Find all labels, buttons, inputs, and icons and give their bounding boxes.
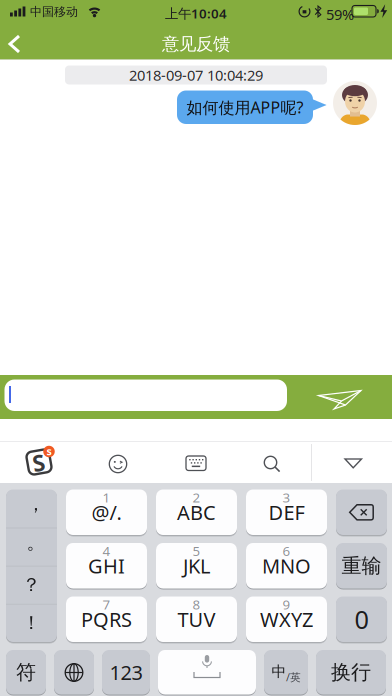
button[interactable]: ， (6, 489, 57, 528)
button[interactable]: Keyboard layout (177, 441, 215, 483)
staticText: 中国移动 (30, 4, 78, 19)
button[interactable]: Chinese/English (264, 650, 308, 694)
staticText: 2 (192, 488, 200, 506)
staticText: DEF (268, 499, 304, 526)
button[interactable]: 8 (156, 596, 237, 642)
button[interactable]: Back (0, 29, 40, 59)
staticText: 8 (192, 595, 200, 613)
button[interactable]: 1 (66, 489, 147, 535)
button[interactable]: 123 (102, 650, 150, 694)
button[interactable]: Next keyboard (54, 650, 94, 694)
staticText: s (46, 444, 51, 458)
staticText: 换行 (331, 660, 371, 685)
staticText: 3 (282, 488, 290, 506)
button[interactable]: 7 (66, 596, 147, 642)
staticText: 重输 (341, 553, 381, 578)
staticText: 59% (326, 4, 354, 24)
staticText: 如何使用APP呢? (186, 97, 303, 118)
staticText: 4 (102, 542, 110, 560)
staticText: S (32, 447, 44, 477)
staticText: 中 (271, 662, 286, 680)
staticText: 。 (26, 531, 45, 554)
button[interactable]: 9 (246, 596, 327, 642)
staticText: ？ (22, 573, 41, 596)
staticText: MNO (262, 552, 311, 579)
staticText: ， (26, 493, 45, 515)
button[interactable]: 重输 (336, 543, 387, 588)
staticText: JKL (183, 552, 210, 579)
staticText: PQRS (81, 606, 132, 633)
button[interactable]: ？ (6, 566, 57, 604)
staticText: 符 (16, 660, 36, 685)
staticText: 2018-09-07 10:04:29 (129, 65, 263, 85)
staticText: 6 (282, 542, 290, 560)
button[interactable]: Send (305, 375, 375, 419)
staticText: @/. (91, 499, 121, 526)
button[interactable]: 5 (156, 543, 237, 588)
staticText: 上午10:04 (165, 4, 227, 22)
staticText: GHI (88, 552, 125, 579)
button[interactable]: 3 (246, 489, 327, 535)
staticText: ！ (22, 611, 41, 634)
staticText: 5 (192, 542, 200, 560)
staticText: 9 (282, 595, 290, 613)
button[interactable]: 4 (66, 543, 147, 588)
staticText: 123 (109, 659, 142, 686)
button[interactable]: 6 (246, 543, 327, 588)
button[interactable]: Search (253, 441, 291, 483)
button[interactable]: Sogou input (17, 441, 61, 483)
staticText: 7 (102, 595, 110, 613)
button[interactable]: ！ (6, 604, 57, 642)
button[interactable]: 0 (336, 596, 387, 642)
staticText: 0 (354, 602, 368, 636)
button[interactable]: Delete (336, 489, 387, 535)
staticText: ABC (177, 499, 216, 526)
button[interactable]: 。 (6, 528, 57, 566)
button[interactable]: Dismiss keyboard (334, 441, 372, 483)
button[interactable]: 符 (6, 650, 46, 694)
staticText: TUV (177, 606, 215, 633)
button[interactable]: 换行 (316, 650, 386, 694)
button[interactable]: Message input (4, 379, 287, 411)
button[interactable]: Emoji (99, 441, 137, 483)
button[interactable]: Space (158, 650, 256, 694)
button[interactable]: 2 (156, 489, 237, 535)
staticText: WXYZ (260, 606, 313, 633)
staticText: 意见反馈 (162, 33, 230, 55)
staticText: /英 (286, 670, 301, 684)
staticText: 1 (102, 488, 110, 506)
